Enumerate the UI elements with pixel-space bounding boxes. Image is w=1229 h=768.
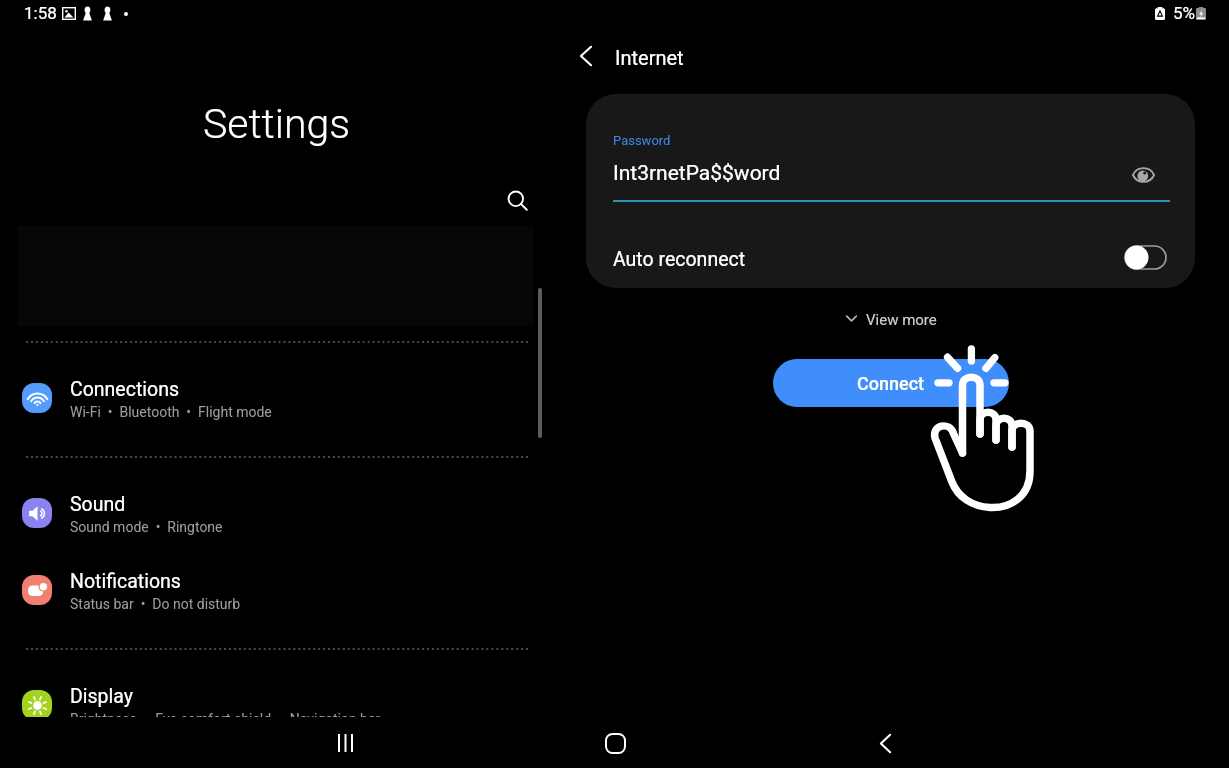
button[interactable]: Connect	[773, 359, 1009, 407]
staticText: Internet	[615, 46, 684, 69]
staticText: Brightness • Eye comfort shield • Naviga…	[70, 711, 381, 727]
staticText: Notifications	[70, 570, 181, 593]
staticText: Int3rnetPa$$word	[613, 161, 781, 186]
button[interactable]: Back	[861, 719, 909, 767]
button[interactable]: Search	[496, 179, 540, 223]
button[interactable]: Home	[591, 719, 639, 767]
button[interactable]: Show password	[1121, 156, 1165, 194]
staticText: Password	[613, 133, 671, 148]
staticText: Status bar • Do not disturb	[70, 596, 241, 612]
button[interactable]: Display	[0, 667, 553, 744]
staticText: 5%	[1173, 3, 1196, 23]
staticText: Wi-Fi • Bluetooth • Flight mode	[70, 404, 272, 420]
button[interactable]: Notifications	[0, 552, 553, 629]
staticText: 1:58	[24, 3, 57, 23]
button[interactable]: Recents	[321, 719, 369, 767]
staticText: Sound	[70, 493, 126, 516]
button[interactable]: Back	[564, 34, 608, 78]
button[interactable]: Sound	[0, 475, 553, 552]
staticText: Auto reconnect	[613, 248, 746, 271]
staticText: View more	[866, 311, 937, 329]
button[interactable]: View more	[838, 304, 944, 334]
staticText: Display	[70, 685, 133, 708]
staticText: Sound mode • Ringtone	[70, 519, 223, 535]
button[interactable]	[586, 233, 1195, 283]
button[interactable]: Connections	[0, 360, 553, 437]
button[interactable]: Auto reconnect toggle	[1125, 244, 1171, 272]
staticText: Settings	[0, 100, 553, 148]
staticText: Connect	[857, 373, 925, 394]
staticText: Connections	[70, 378, 179, 401]
